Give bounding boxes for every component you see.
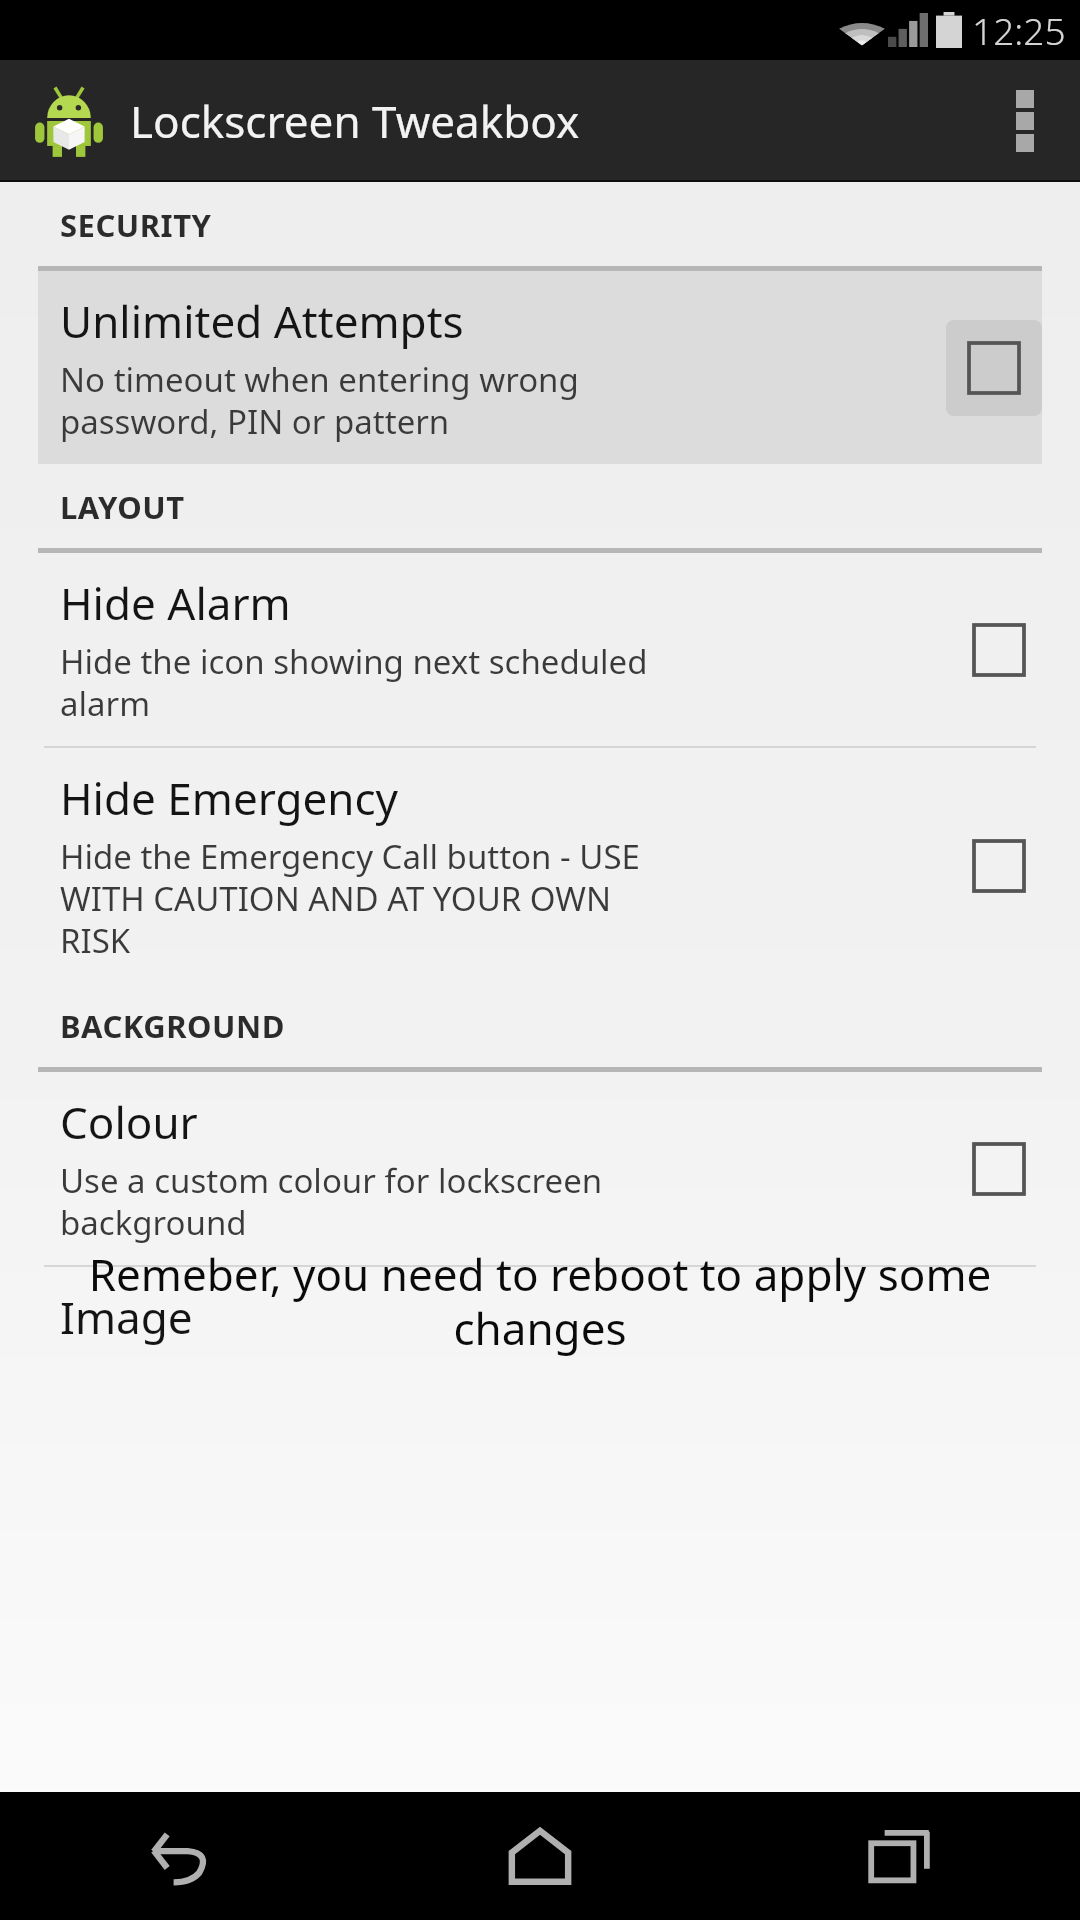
button[interactable]: Unlimited Attempts <box>38 271 1042 464</box>
button[interactable]: Toggle <box>956 823 1042 909</box>
staticText: Unlimited Attempts <box>60 291 464 351</box>
staticText: Lockscreen Tweakbox <box>130 91 580 151</box>
button[interactable]: Toggle <box>946 320 1042 416</box>
button[interactable]: Home <box>360 1792 720 1920</box>
button[interactable]: Back <box>0 1792 360 1920</box>
staticText: Use a custom colour for lockscreen backg… <box>60 1158 603 1245</box>
button[interactable]: Colour <box>0 1072 1080 1265</box>
staticText: SECURITY <box>60 204 212 246</box>
button[interactable]: Toggle <box>956 607 1042 693</box>
staticText: LAYOUT <box>60 486 185 528</box>
button[interactable]: Image <box>0 1267 1080 1367</box>
button[interactable]: Toggle <box>956 1126 1042 1212</box>
button[interactable]: Hide Alarm <box>0 553 1080 746</box>
staticText: Remeber, you need to reboot to apply som… <box>18 1244 1062 1358</box>
staticText: BACKGROUND <box>60 1005 285 1047</box>
button[interactable]: Hide Emergency <box>0 748 1080 983</box>
staticText: Hide the icon showing next scheduled ala… <box>60 639 648 726</box>
button[interactable]: More options <box>970 60 1080 182</box>
staticText: Colour <box>60 1092 198 1152</box>
staticText: 12:25 <box>972 5 1066 55</box>
staticText: Hide the Emergency Call button - USE WIT… <box>60 834 640 963</box>
staticText: No timeout when entering wrong password,… <box>60 357 579 444</box>
staticText: Image <box>60 1287 193 1347</box>
staticText: Hide Emergency <box>60 768 399 828</box>
staticText: Hide Alarm <box>60 573 291 633</box>
button[interactable]: Recent apps <box>720 1792 1080 1920</box>
